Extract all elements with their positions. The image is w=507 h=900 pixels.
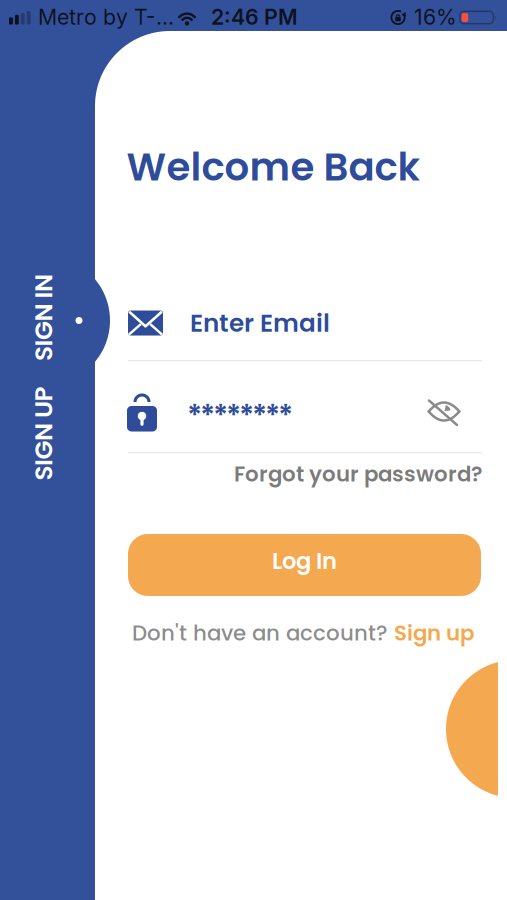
button[interactable]: Forgot your password? (234, 459, 482, 489)
staticText: Don't have an account? (132, 618, 387, 648)
staticText: 2:46 PM (211, 4, 298, 30)
staticText: SIGN UP (0, 416, 90, 451)
staticText: Forgot your password? (234, 459, 482, 489)
staticText: 16% (414, 4, 457, 30)
staticText: Enter Email (190, 306, 330, 340)
button[interactable]: SIGN IN (0, 300, 87, 335)
staticText: Welcome Back (126, 140, 420, 194)
button[interactable]: Enter Email (128, 300, 482, 346)
button[interactable]: ******** (127, 389, 417, 433)
button[interactable]: SIGN UP (0, 416, 90, 451)
staticText: ******** (187, 395, 293, 437)
button[interactable]: Show password (427, 398, 460, 425)
button[interactable]: Sign up (394, 618, 474, 648)
staticText: Log In (272, 545, 337, 577)
staticText: Metro by T-... (38, 4, 174, 30)
staticText: SIGN IN (0, 300, 87, 335)
button[interactable]: Log In (128, 534, 481, 596)
staticText: Sign up (394, 618, 474, 648)
